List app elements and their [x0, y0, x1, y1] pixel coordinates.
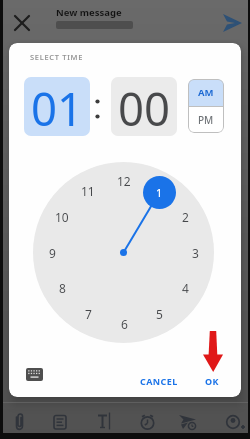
- staticText: 1: [156, 183, 163, 199]
- button[interactable]: [133, 407, 161, 435]
- staticText: PM: [198, 113, 214, 127]
- button[interactable]: [6, 407, 34, 435]
- staticText: New message: [56, 6, 122, 19]
- button[interactable]: [90, 407, 118, 435]
- staticText: 11: [81, 183, 95, 199]
- button[interactable]: 01: [24, 77, 90, 136]
- staticText: 9: [49, 245, 56, 261]
- staticText: 2: [182, 209, 189, 225]
- button[interactable]: CANCEL: [130, 372, 188, 389]
- staticText: 00: [118, 77, 171, 136]
- staticText: CANCEL: [140, 375, 178, 387]
- staticText: 12: [117, 173, 131, 189]
- staticText: 1: [156, 185, 163, 200]
- button[interactable]: [22, 363, 48, 385]
- button[interactable]: AM: [188, 79, 224, 106]
- button[interactable]: [174, 407, 202, 435]
- staticText: 6: [121, 316, 128, 332]
- staticText: AM: [198, 86, 214, 99]
- button[interactable]: 00: [111, 77, 177, 136]
- staticText: 01: [31, 77, 84, 136]
- staticText: 7: [85, 306, 92, 322]
- button[interactable]: 1: [143, 176, 176, 209]
- staticText: 5: [156, 306, 163, 322]
- staticText: 4: [182, 280, 189, 296]
- staticText: 8: [59, 280, 66, 296]
- button[interactable]: [8, 9, 38, 37]
- button[interactable]: [46, 407, 74, 435]
- button[interactable]: OK: [197, 372, 227, 389]
- staticText: SELECT TIME: [30, 52, 84, 62]
- button[interactable]: PM: [188, 106, 224, 133]
- staticText: OK: [205, 375, 219, 387]
- staticText: 3: [192, 245, 199, 261]
- button[interactable]: [218, 10, 246, 36]
- button[interactable]: [220, 407, 248, 435]
- staticText: 10: [55, 209, 69, 225]
